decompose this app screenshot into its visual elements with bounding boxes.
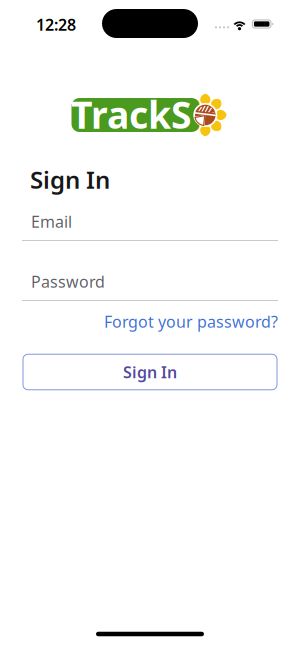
button[interactable]: Forgot your password?	[104, 311, 300, 332]
staticText: 12:28	[36, 14, 76, 35]
button[interactable]: Password	[22, 272, 278, 301]
staticText: TrackS	[71, 89, 192, 139]
button[interactable]: Email	[22, 212, 278, 241]
staticText: Sign In	[30, 164, 110, 195]
staticText: Forgot your password?	[104, 311, 278, 332]
staticText: Password	[31, 271, 105, 292]
staticText: Sign In	[123, 361, 177, 383]
staticText: Email	[31, 211, 72, 232]
button[interactable]: Sign In	[22, 354, 277, 390]
